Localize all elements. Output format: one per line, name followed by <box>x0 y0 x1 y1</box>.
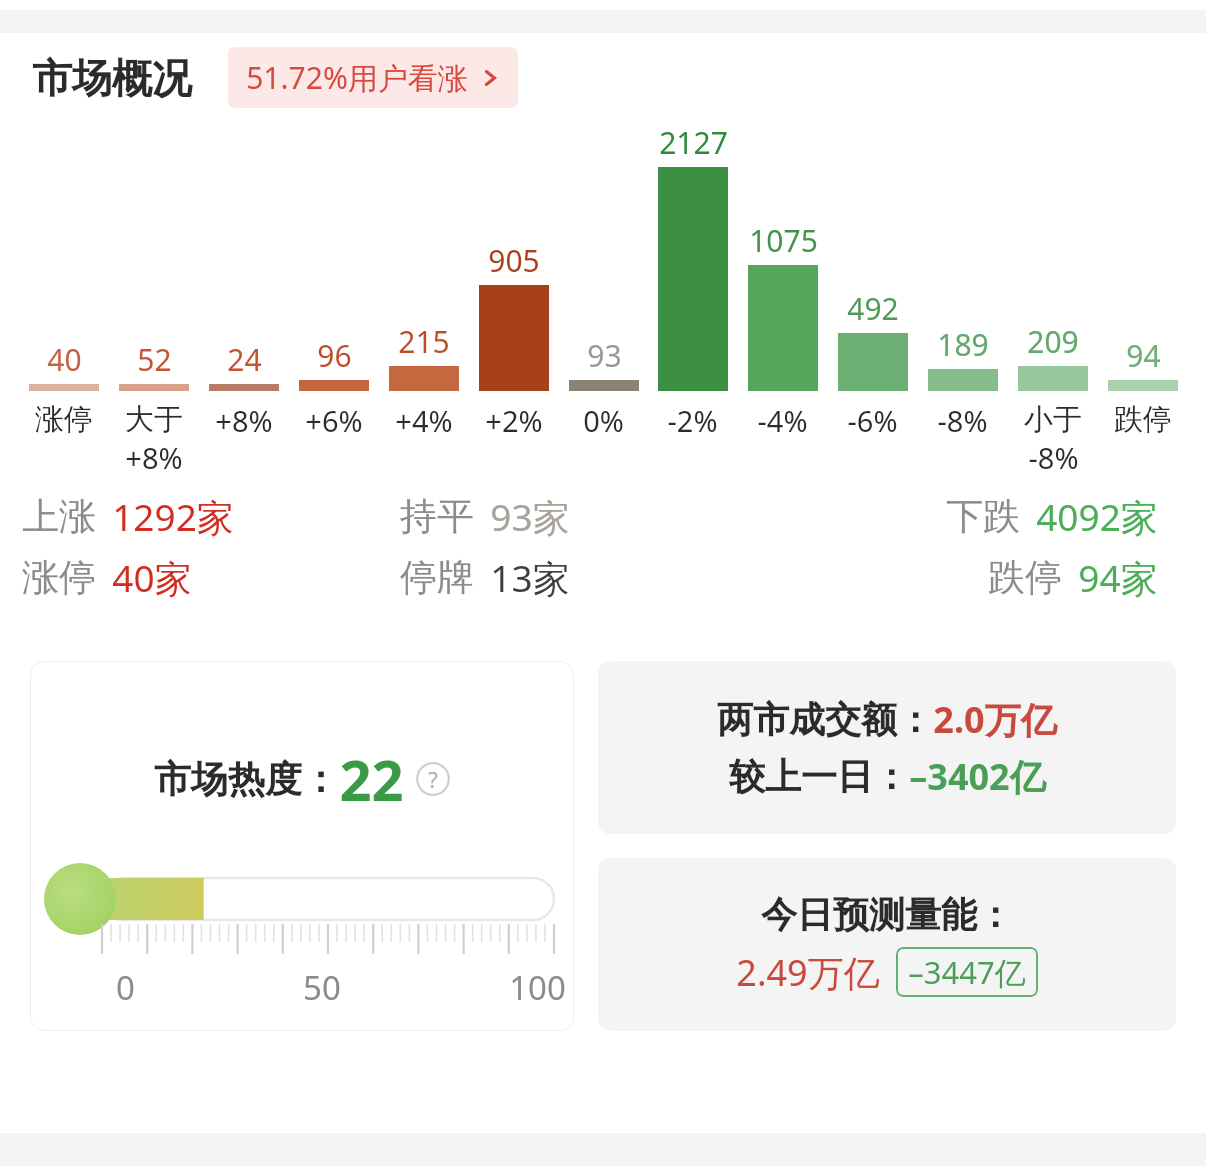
staticText: 1075 <box>749 220 818 261</box>
staticText: 13家 <box>490 552 570 603</box>
staticText: 215 <box>398 321 450 362</box>
staticText: +6% <box>305 401 363 440</box>
button[interactable]: 51.72%用户看涨 <box>228 47 518 108</box>
staticText: 小于 <box>1024 401 1082 438</box>
staticText: -8% <box>937 401 988 440</box>
staticText: 2127 <box>659 122 728 163</box>
button[interactable]: 市场热度： <box>30 661 574 1031</box>
staticText: 100 <box>509 965 566 1010</box>
staticText: +4% <box>395 401 453 440</box>
staticText: 0 <box>116 965 135 1010</box>
staticText: +8% <box>125 438 183 477</box>
staticText: -6% <box>847 401 898 440</box>
staticText: 40 <box>47 339 82 380</box>
staticText: 22 <box>339 741 404 817</box>
staticText: 209 <box>1027 321 1079 362</box>
staticText: ? <box>428 764 438 794</box>
button[interactable]: 今日预测量能： <box>598 858 1176 1031</box>
staticText: 94家 <box>1078 552 1158 603</box>
staticText: –3447亿 <box>908 951 1026 993</box>
staticText: 93 <box>587 335 622 376</box>
staticText: -2% <box>667 401 718 440</box>
staticText: 市场概况 <box>32 53 192 103</box>
staticText: 上涨 <box>22 493 96 540</box>
staticText: 2.49万亿 <box>736 948 880 997</box>
staticText: 停牌 <box>400 554 474 601</box>
staticText: 市场热度： <box>154 756 339 803</box>
staticText: -8% <box>1028 438 1079 477</box>
staticText: –3402亿 <box>909 752 1046 801</box>
staticText: 持平 <box>400 493 474 540</box>
staticText: 0% <box>583 401 624 440</box>
staticText: +2% <box>485 401 543 440</box>
staticText: 50 <box>303 965 341 1010</box>
staticText: 52 <box>137 339 172 380</box>
staticText: 905 <box>488 240 540 281</box>
staticText: 2.0万亿 <box>933 695 1057 744</box>
staticText: +8% <box>215 401 273 440</box>
staticText: 跌停 <box>1114 401 1172 438</box>
staticText: 24 <box>227 339 262 380</box>
staticText: 下跌 <box>946 493 1020 540</box>
staticText: 93家 <box>490 491 570 542</box>
staticText: -4% <box>757 401 808 440</box>
staticText: 较上一日： <box>729 754 909 799</box>
button[interactable]: 两市成交额： <box>598 661 1176 834</box>
staticText: 40家 <box>112 552 192 603</box>
staticText: 94 <box>1126 335 1161 376</box>
staticText: 189 <box>937 324 989 365</box>
button[interactable]: 帮助 <box>416 762 450 796</box>
staticText: 大于 <box>125 401 183 438</box>
staticText: 4092家 <box>1036 491 1158 542</box>
staticText: 今日预测量能： <box>761 892 1013 937</box>
staticText: 492 <box>847 288 899 329</box>
staticText: 涨停 <box>35 401 93 438</box>
staticText: 跌停 <box>988 554 1062 601</box>
staticText: 96 <box>317 335 352 376</box>
staticText: 涨停 <box>22 554 96 601</box>
staticText: 两市成交额： <box>717 697 933 742</box>
staticText: 51.72%用户看涨 <box>246 57 468 98</box>
staticText: 1292家 <box>112 491 234 542</box>
